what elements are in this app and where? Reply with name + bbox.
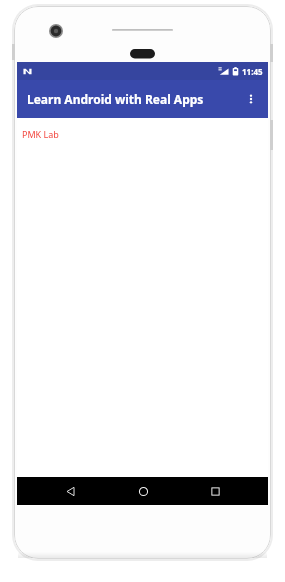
button[interactable]: Recent apps bbox=[195, 477, 235, 505]
button[interactable]: Back bbox=[50, 477, 90, 505]
button[interactable]: More options bbox=[234, 82, 268, 116]
staticText: Learn Android with Real Apps bbox=[27, 91, 204, 107]
button[interactable]: PMK Lab bbox=[22, 128, 59, 140]
staticText: 11:45 bbox=[242, 66, 263, 77]
button[interactable]: Home bbox=[123, 477, 163, 505]
